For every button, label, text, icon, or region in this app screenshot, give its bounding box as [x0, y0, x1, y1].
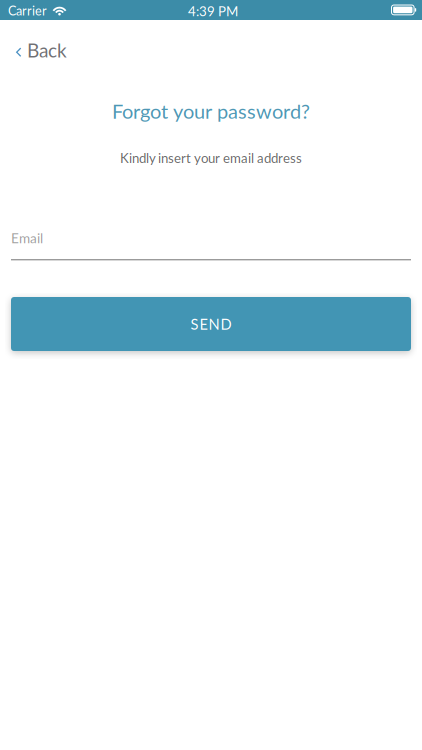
staticText: Carrier: [8, 3, 47, 18]
staticText: 4:39 PM: [188, 3, 238, 19]
staticText: Back: [27, 39, 67, 61]
staticText: Forgot your password?: [112, 99, 310, 123]
button[interactable]: S E N D: [11, 297, 411, 351]
staticText: Email: [11, 230, 43, 246]
staticText: S E N D: [190, 315, 231, 333]
staticText: Kindly insert your email address: [120, 150, 302, 166]
button[interactable]: Back: [0, 30, 120, 70]
